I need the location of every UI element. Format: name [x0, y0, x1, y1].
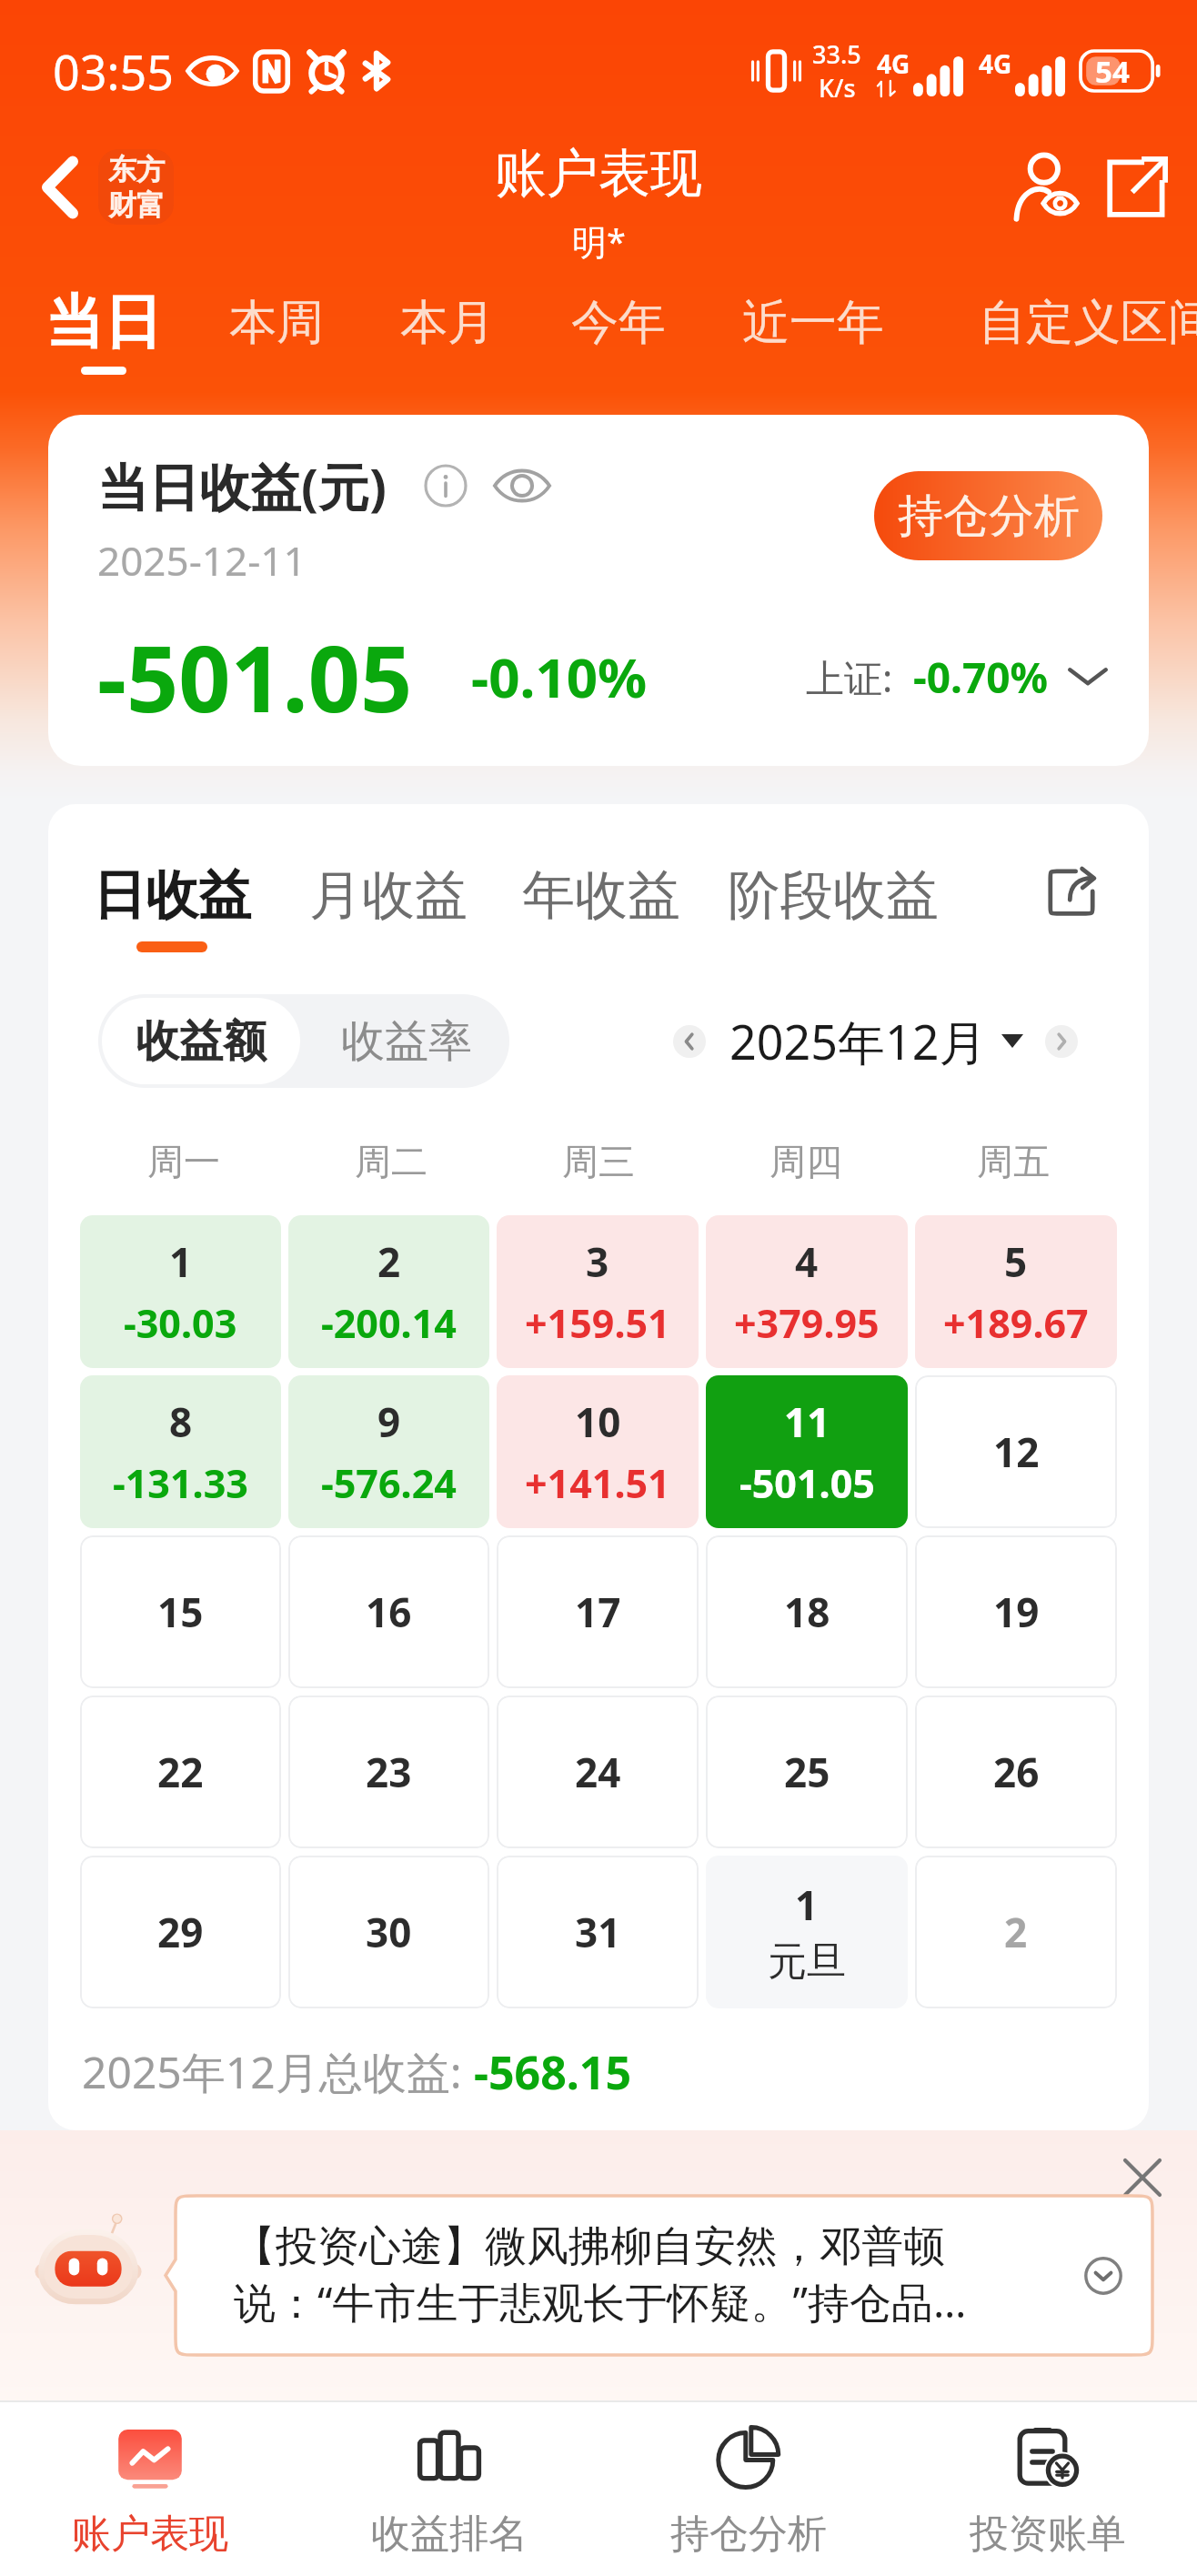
button[interactable]: 收益额	[102, 998, 300, 1084]
staticText: 近一年	[742, 293, 884, 353]
button[interactable]: 近一年	[742, 264, 884, 353]
button[interactable]: 当日	[45, 264, 162, 375]
staticText: 收益排名	[371, 2510, 528, 2559]
staticText: 投资账单	[970, 2510, 1126, 2559]
button[interactable]: 1	[80, 1215, 281, 1368]
button[interactable]: 自定义区间	[979, 264, 1197, 353]
staticText: 4	[795, 1234, 819, 1289]
staticText: 周三	[562, 1139, 635, 1184]
button[interactable]: Account	[1006, 144, 1091, 229]
button[interactable]: Next month	[1041, 1021, 1081, 1062]
staticText: -576.24	[321, 1456, 457, 1510]
button[interactable]: Expand	[1078, 2250, 1129, 2301]
button[interactable]: 26	[915, 1696, 1117, 1848]
button[interactable]: 19	[915, 1535, 1117, 1688]
staticText: 30	[366, 1905, 412, 1959]
button[interactable]: 月收益	[309, 862, 468, 941]
button[interactable]: 今年	[571, 264, 666, 353]
button[interactable]: 2	[288, 1215, 489, 1368]
button[interactable]: Share	[1044, 864, 1099, 919]
button[interactable]: 收益排名	[299, 2402, 598, 2576]
staticText: 11	[784, 1394, 830, 1449]
staticText: +379.95	[734, 1296, 880, 1350]
staticText: 31	[575, 1905, 621, 1959]
staticText: 持仓分析	[670, 2510, 827, 2559]
button[interactable]: 22	[80, 1696, 281, 1848]
button[interactable]: 24	[497, 1696, 699, 1848]
button[interactable]: 8	[80, 1375, 281, 1528]
button[interactable]: 日收益	[93, 862, 251, 952]
button[interactable]: 25	[706, 1696, 908, 1848]
button[interactable]: 投资账单	[898, 2402, 1197, 2576]
staticText: 3	[586, 1234, 609, 1289]
staticText: -30.03	[124, 1296, 237, 1350]
staticText: 33.5	[812, 37, 861, 71]
staticText: 10	[575, 1394, 621, 1449]
staticText: 29	[157, 1905, 204, 1959]
staticText: 54	[1095, 51, 1130, 91]
button[interactable]: 17	[497, 1535, 699, 1688]
staticText: 本周	[229, 293, 324, 353]
staticText: 当日	[45, 286, 162, 359]
button[interactable]: 当日收益(元)	[48, 415, 1149, 766]
button[interactable]: 15	[80, 1535, 281, 1688]
staticText: -501.05	[739, 1456, 875, 1510]
button[interactable]: 11	[706, 1375, 908, 1528]
button[interactable]: 年收益	[522, 862, 680, 941]
button[interactable]: 23	[288, 1696, 489, 1848]
button[interactable]: 本月	[400, 264, 495, 353]
button[interactable]: 9	[288, 1375, 489, 1528]
staticText: 年收益	[522, 862, 680, 929]
staticText: 2025年12月	[729, 1009, 987, 1073]
button[interactable]: 10	[497, 1375, 699, 1528]
staticText: 收益率	[341, 1014, 472, 1069]
button[interactable]: 本周	[229, 264, 324, 353]
button[interactable]: 4	[706, 1215, 908, 1368]
staticText: 周四	[769, 1139, 842, 1184]
button[interactable]: 29	[80, 1856, 281, 2008]
button[interactable]: 31	[497, 1856, 699, 2008]
button[interactable]: 持仓分析	[598, 2402, 898, 2576]
staticText: 说：“牛市生于悲观长于怀疑。”持仓品…	[234, 2273, 967, 2330]
staticText: 9	[377, 1394, 401, 1449]
button[interactable]: 1	[706, 1856, 908, 2008]
staticText: 2	[377, 1234, 401, 1289]
staticText: 23	[366, 1745, 412, 1799]
button[interactable]: 18	[706, 1535, 908, 1688]
button[interactable]: Back	[24, 151, 96, 224]
button[interactable]: 30	[288, 1856, 489, 2008]
button[interactable]: 3	[497, 1215, 699, 1368]
button[interactable]: 账户表现	[0, 2402, 299, 2576]
staticText: 12	[993, 1424, 1040, 1479]
staticText: -200.14	[321, 1296, 457, 1350]
button[interactable]: 收益率	[304, 994, 509, 1088]
staticText: +189.67	[943, 1296, 1089, 1350]
button[interactable]: 5	[915, 1215, 1117, 1368]
button[interactable]: 16	[288, 1535, 489, 1688]
staticText: -568.15	[474, 2041, 632, 2103]
staticText: 阶段收益	[728, 862, 939, 929]
staticText: 2025-12-11	[97, 533, 307, 588]
button[interactable]: 东方财富	[98, 149, 174, 225]
staticText: 2	[1004, 1905, 1028, 1959]
staticText: 2025年12月总收益:	[82, 2042, 474, 2102]
button[interactable]: Close	[1110, 2145, 1175, 2210]
button[interactable]: 2	[915, 1856, 1117, 2008]
button[interactable]: 12	[915, 1375, 1117, 1528]
button[interactable]: Share	[1095, 144, 1181, 229]
staticText: 持仓分析	[898, 488, 1080, 545]
staticText: 8	[169, 1394, 193, 1449]
button[interactable]: 【投资心途】微风拂柳自安然，邓普顿	[176, 2196, 1152, 2355]
button[interactable]: Previous month	[669, 1021, 709, 1062]
button[interactable]: 2025年12月	[729, 1009, 1023, 1073]
staticText: 收益额	[136, 1014, 267, 1069]
staticText: 元旦	[768, 1937, 846, 1987]
button[interactable]: 阶段收益	[728, 862, 939, 941]
staticText: 16	[366, 1585, 412, 1639]
button[interactable]: 持仓分析	[874, 471, 1102, 560]
staticText: 日收益	[93, 862, 251, 929]
staticText: 本月	[400, 293, 495, 353]
staticText: 15	[157, 1585, 204, 1639]
staticText: 明*	[572, 217, 626, 265]
staticText: 周五	[977, 1139, 1050, 1184]
